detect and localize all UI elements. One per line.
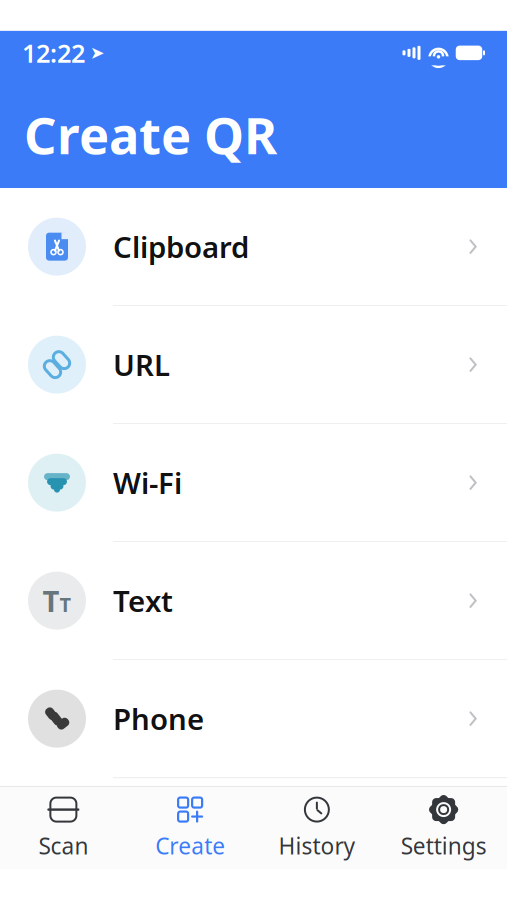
staticText: Clipboard xyxy=(113,227,249,266)
button[interactable]: Wi-Fi xyxy=(0,424,507,542)
staticText: Wi-Fi xyxy=(113,463,182,502)
staticText: 12:22 xyxy=(22,36,85,70)
staticText: Phone xyxy=(113,699,204,738)
staticText: History xyxy=(278,831,355,861)
button[interactable]: Phone xyxy=(0,660,507,778)
button[interactable]: T xyxy=(0,542,507,660)
staticText: Create QR xyxy=(24,101,277,168)
staticText: Scan xyxy=(38,831,88,861)
button[interactable]: URL xyxy=(0,306,507,424)
button[interactable]: Scan xyxy=(0,789,127,867)
staticText: ➤ xyxy=(90,43,105,63)
staticText: Settings xyxy=(401,831,487,861)
button[interactable]: Settings xyxy=(380,789,507,867)
button[interactable]: History xyxy=(253,789,380,867)
button[interactable]: Create xyxy=(127,789,254,867)
button[interactable]: Clipboard xyxy=(0,188,507,306)
staticText: T xyxy=(42,581,59,620)
staticText: T xyxy=(59,591,71,617)
staticText: URL xyxy=(113,345,170,384)
staticText: Text xyxy=(113,581,173,620)
staticText: Create xyxy=(155,831,225,861)
